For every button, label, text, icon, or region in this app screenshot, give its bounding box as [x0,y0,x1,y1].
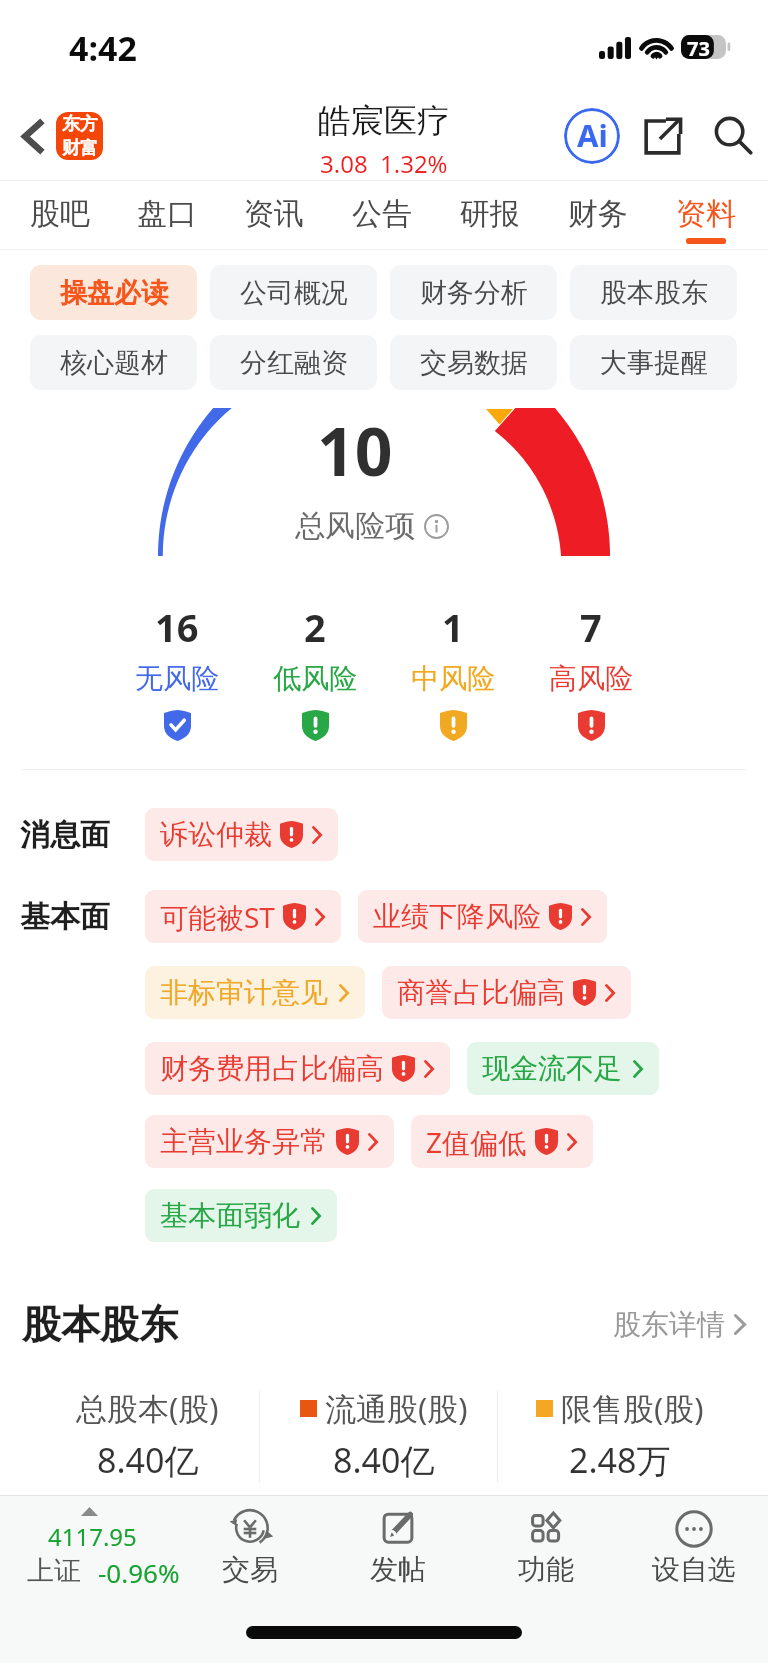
button[interactable]: 主营业务异常 [145,1115,394,1168]
staticText: 现金流不足 [482,1051,622,1086]
staticText: 73 [687,35,710,59]
button[interactable]: 盘口 [113,181,220,249]
staticText: 研报 [460,195,520,233]
button[interactable]: 现金流不足 [467,1042,659,1095]
staticText: Z值偏低 [426,1123,527,1161]
button[interactable]: 1 [384,601,522,741]
button[interactable]: 4117.95 [0,1496,176,1596]
button[interactable]: 16 [108,601,246,741]
staticText: 基本面 [20,898,145,936]
staticText: 非标审计意见 [160,975,328,1010]
button[interactable]: 股吧 [6,181,113,249]
staticText: 无风险 [135,661,219,696]
staticText: 大事提醒 [600,346,708,380]
button[interactable]: 交易 [176,1496,324,1587]
button[interactable]: East Money home [56,112,103,160]
button[interactable]: 业绩下降风险 [358,890,607,943]
button[interactable]: 7 [522,601,660,741]
staticText: 流通股(股) [325,1387,468,1429]
staticText: 基本面弱化 [160,1198,300,1233]
staticText: 核心题材 [60,346,168,380]
button[interactable]: 商誉占比偏高 [382,966,631,1019]
staticText: 股本股东 [22,1300,178,1349]
staticText: 中风险 [411,661,495,696]
button[interactable]: 可能被ST [145,890,341,943]
staticText: 低风险 [273,661,357,696]
button[interactable]: 发帖 [324,1496,472,1587]
staticText: 资料 [676,195,736,233]
staticText: 上证 [27,1554,81,1588]
staticText: 设自选 [652,1552,736,1587]
button[interactable]: Z值偏低 [411,1115,593,1168]
staticText: 皓宸医疗 [318,100,450,142]
staticText: 总风险项 [295,507,415,545]
button[interactable]: 财务分析 [390,265,557,320]
button[interactable]: Share [634,108,690,164]
staticText: 公司概况 [240,276,348,310]
staticText: 7 [580,601,602,653]
staticText: 交易数据 [420,346,528,380]
staticText: 商誉占比偏高 [397,975,565,1010]
staticText: 财务分析 [420,276,528,310]
button[interactable]: Search [706,108,762,164]
staticText: 1 [442,601,464,653]
staticText: 财富 [62,137,98,160]
staticText: 10 [317,405,393,495]
button[interactable]: 非标审计意见 [145,966,365,1019]
button[interactable]: 诉讼仲裁 [145,808,338,861]
staticText: 限售股(股) [561,1387,704,1429]
button[interactable]: 大事提醒 [570,335,737,390]
staticText: 1.32% [380,147,448,180]
button[interactable]: 财务费用占比偏高 [145,1042,450,1095]
button[interactable]: Back [8,112,56,160]
staticText: 财务 [568,195,628,233]
button[interactable]: 股东详情 [613,1307,746,1342]
staticText: 公告 [352,195,412,233]
button[interactable]: AI assistant [562,106,622,166]
staticText: 业绩下降风险 [373,899,541,934]
button[interactable]: 公告 [328,181,436,249]
staticText: 可能被ST [160,898,275,936]
button[interactable]: 基本面弱化 [145,1189,337,1242]
button[interactable]: 财务 [544,181,652,249]
button[interactable]: 操盘必读 [30,265,197,320]
button[interactable]: 2 [246,601,384,741]
staticText: 操盘必读 [60,276,168,310]
staticText: 资讯 [244,195,304,233]
staticText: 诉讼仲裁 [160,817,272,852]
staticText: 分红融资 [240,346,348,380]
staticText: 盘口 [137,195,197,233]
button[interactable]: 资料 [652,181,760,249]
staticText: Ai [577,114,608,156]
staticText: 高风险 [549,661,633,696]
staticText: 16 [155,601,199,653]
staticText: 发帖 [370,1552,426,1587]
button[interactable]: 研报 [436,181,544,249]
staticText: 功能 [518,1552,574,1587]
staticText: 3.08 [320,147,368,180]
staticText: 股本股东 [600,276,708,310]
staticText: 财务费用占比偏高 [160,1051,384,1086]
staticText: 8.40亿 [333,1437,435,1481]
button[interactable]: 设自选 [620,1496,768,1587]
button[interactable]: 股本股东 [570,265,737,320]
button[interactable]: 分红融资 [210,335,377,390]
staticText: -0.96% [98,1555,180,1590]
staticText: 东方 [62,113,98,136]
button[interactable]: 公司概况 [210,265,377,320]
staticText: 8.40亿 [97,1437,199,1481]
button[interactable]: 资讯 [220,181,328,249]
button[interactable]: 功能 [472,1496,620,1587]
staticText: 主营业务异常 [160,1124,328,1159]
button[interactable]: 交易数据 [390,335,557,390]
staticText: 总股本(股) [76,1387,219,1429]
staticText: 4:42 [69,25,137,71]
staticText: 交易 [222,1552,278,1587]
button[interactable]: 核心题材 [30,335,197,390]
staticText: 股东详情 [613,1307,725,1342]
staticText: 2 [304,601,326,653]
staticText: 2.48万 [569,1437,671,1481]
staticText: 股吧 [30,195,90,233]
staticText: 4117.95 [48,1520,137,1553]
staticText: 消息面 [20,816,145,854]
